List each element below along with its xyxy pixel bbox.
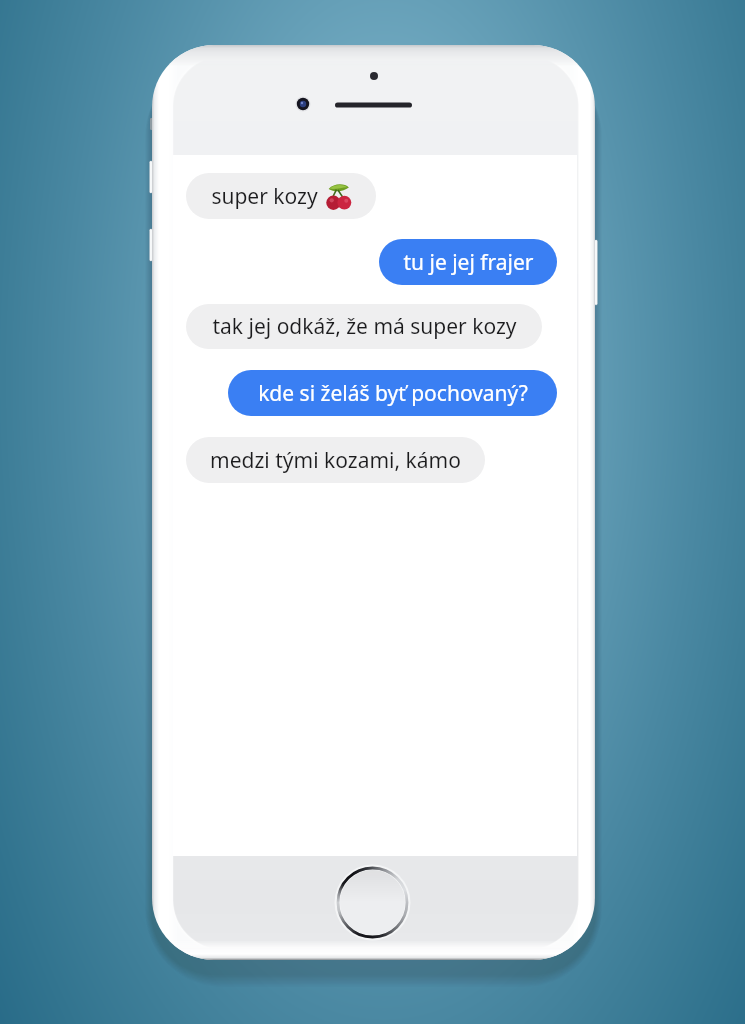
- button[interactable]: kde si želáš byť pochovaný?: [228, 370, 557, 416]
- staticText: tu je jej frajer: [403, 248, 534, 277]
- button[interactable]: Home: [332, 862, 413, 943]
- staticText: super kozy: [211, 182, 318, 211]
- button[interactable]: tak jej odkáž, že má super kozy: [186, 304, 542, 349]
- button[interactable]: super kozy: [186, 173, 376, 219]
- button[interactable]: tu je jej frajer: [379, 239, 557, 285]
- staticText: tak jej odkáž, že má super kozy: [212, 312, 517, 341]
- staticText: medzi tými kozami, kámo: [210, 446, 461, 475]
- button[interactable]: medzi tými kozami, kámo: [186, 437, 485, 483]
- staticText: kde si želáš byť pochovaný?: [258, 379, 528, 408]
